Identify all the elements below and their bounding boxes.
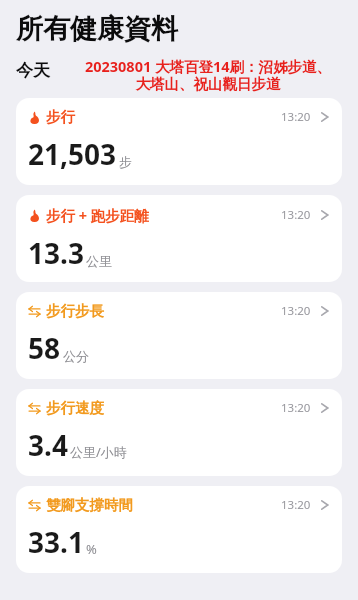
staticText: 13:20 bbox=[281, 207, 311, 223]
other: Open details bbox=[320, 303, 330, 319]
staticText: 步行 bbox=[46, 108, 75, 126]
button[interactable]: 步行 + 跑步距離 bbox=[16, 195, 342, 282]
staticText: 公里 bbox=[86, 253, 112, 269]
staticText: 13.3 bbox=[28, 234, 84, 272]
button[interactable]: 步行速度 bbox=[16, 389, 342, 476]
other: Open details bbox=[320, 207, 330, 223]
staticText: 21,503 bbox=[28, 135, 117, 173]
other: Open details bbox=[320, 497, 330, 513]
staticText: 20230801 大塔百登14刷：沼姊步道、 大塔山、祝山觀日步道 bbox=[62, 56, 354, 93]
staticText: 13:20 bbox=[281, 303, 311, 319]
button[interactable]: 雙腳支撐時間 bbox=[16, 486, 342, 573]
staticText: 公分 bbox=[63, 348, 89, 364]
staticText: 今天 bbox=[16, 60, 50, 81]
staticText: 13:20 bbox=[281, 400, 311, 416]
other: Open details bbox=[320, 109, 330, 125]
staticText: % bbox=[86, 540, 97, 558]
staticText: 步行 + 跑步距離 bbox=[46, 205, 149, 225]
staticText: 13:20 bbox=[281, 497, 311, 513]
staticText: 13:20 bbox=[281, 109, 311, 125]
other: Open details bbox=[320, 400, 330, 416]
staticText: 33.1 bbox=[28, 523, 84, 561]
staticText: 3.4 bbox=[28, 426, 68, 464]
staticText: 步行速度 bbox=[46, 399, 104, 417]
button[interactable]: 步行 bbox=[16, 98, 342, 185]
button[interactable]: 步行步長 bbox=[16, 292, 342, 379]
staticText: 步行步長 bbox=[46, 302, 104, 320]
staticText: 所有健康資料 bbox=[16, 12, 178, 46]
staticText: 公里/小時 bbox=[70, 443, 127, 461]
staticText: 58 bbox=[28, 329, 61, 367]
staticText: 雙腳支撐時間 bbox=[46, 496, 133, 514]
staticText: 步 bbox=[119, 154, 132, 170]
